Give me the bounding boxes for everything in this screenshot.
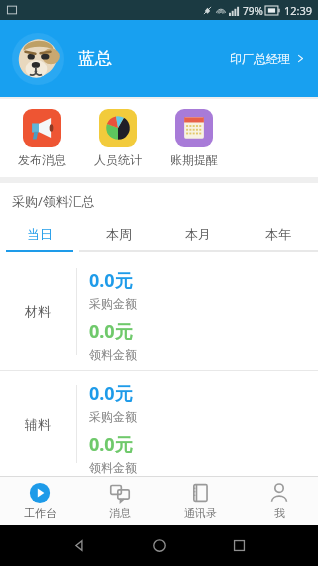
staticText: 本月 bbox=[185, 226, 211, 242]
staticText: 账期提醒 bbox=[170, 152, 218, 167]
button[interactable]: 消息 bbox=[80, 477, 160, 525]
button[interactable]: 我 bbox=[240, 477, 318, 525]
staticText: 发布消息 bbox=[18, 152, 66, 167]
other: Open profile bbox=[295, 53, 306, 64]
staticText: 人员统计 bbox=[94, 152, 142, 167]
button[interactable]: 本月 bbox=[158, 218, 238, 250]
button[interactable]: 当日 bbox=[0, 218, 79, 250]
staticText: 工作台 bbox=[24, 506, 57, 520]
button[interactable]: Home bbox=[119, 538, 199, 553]
button[interactable]: 人员统计 bbox=[80, 107, 156, 169]
button[interactable]: 通讯录 bbox=[160, 477, 240, 525]
button[interactable]: Recent apps bbox=[199, 539, 279, 552]
staticText: 0.0元 bbox=[89, 381, 133, 406]
staticText: 0.0元 bbox=[89, 319, 133, 344]
staticText: 当日 bbox=[27, 226, 53, 242]
staticText: 0.0元 bbox=[89, 268, 133, 293]
staticText: 12:39 bbox=[284, 3, 313, 18]
staticText: 材料 bbox=[25, 303, 51, 319]
button[interactable]: Back bbox=[39, 538, 119, 553]
staticText: 0.0元 bbox=[89, 432, 133, 457]
button[interactable]: 本周 bbox=[79, 218, 158, 250]
staticText: 本周 bbox=[106, 226, 132, 242]
staticText: 蓝总 bbox=[78, 48, 112, 69]
staticText: 采购金额 bbox=[89, 409, 137, 424]
button[interactable]: 账期提醒 bbox=[156, 107, 232, 169]
staticText: 消息 bbox=[109, 506, 131, 520]
button[interactable]: 蓝总 bbox=[0, 20, 318, 97]
staticText: 领料金额 bbox=[89, 347, 137, 362]
button[interactable]: 工作台 bbox=[0, 477, 80, 525]
staticText: 通讯录 bbox=[184, 506, 217, 520]
staticText: 采购金额 bbox=[89, 296, 137, 311]
staticText: 我 bbox=[274, 506, 285, 520]
staticText: 本年 bbox=[265, 226, 291, 242]
button[interactable]: 本年 bbox=[238, 218, 318, 250]
staticText: 79% bbox=[243, 4, 263, 18]
staticText: 采购/领料汇总 bbox=[12, 192, 95, 210]
staticText: 辅料 bbox=[25, 416, 51, 432]
button[interactable]: 发布消息 bbox=[4, 107, 80, 169]
staticText: 领料金额 bbox=[89, 460, 137, 475]
staticText: 印厂总经理 bbox=[230, 51, 290, 66]
